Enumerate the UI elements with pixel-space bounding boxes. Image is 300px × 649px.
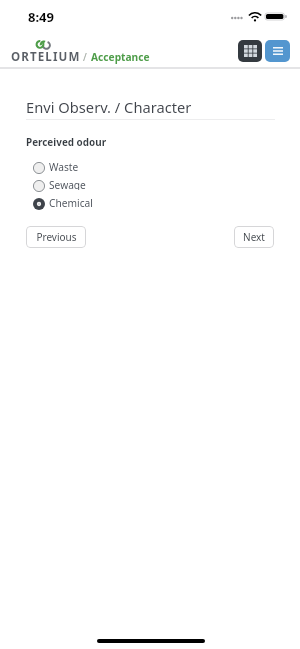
staticText: Next <box>243 230 265 244</box>
button[interactable]: Chemical <box>33 198 153 210</box>
button[interactable]: Menu <box>265 40 290 62</box>
staticText: 8:49 <box>28 8 54 26</box>
staticText: / <box>83 50 87 64</box>
button[interactable]: Waste <box>33 162 153 174</box>
staticText: Envi Observ. / Character <box>26 97 192 117</box>
staticText: Acceptance <box>91 50 150 64</box>
staticText: Waste <box>49 160 79 172</box>
staticText: Previous <box>36 230 77 244</box>
staticText: Chemical <box>49 196 93 208</box>
staticText: Perceived odour <box>26 135 107 148</box>
staticText: Sewage <box>49 178 86 190</box>
button[interactable]: Sewage <box>33 180 153 192</box>
button[interactable]: Apps <box>238 40 262 62</box>
button[interactable]: Previous <box>26 226 86 248</box>
button[interactable]: Next <box>234 226 274 248</box>
staticText: ORTELIUM <box>11 49 81 65</box>
